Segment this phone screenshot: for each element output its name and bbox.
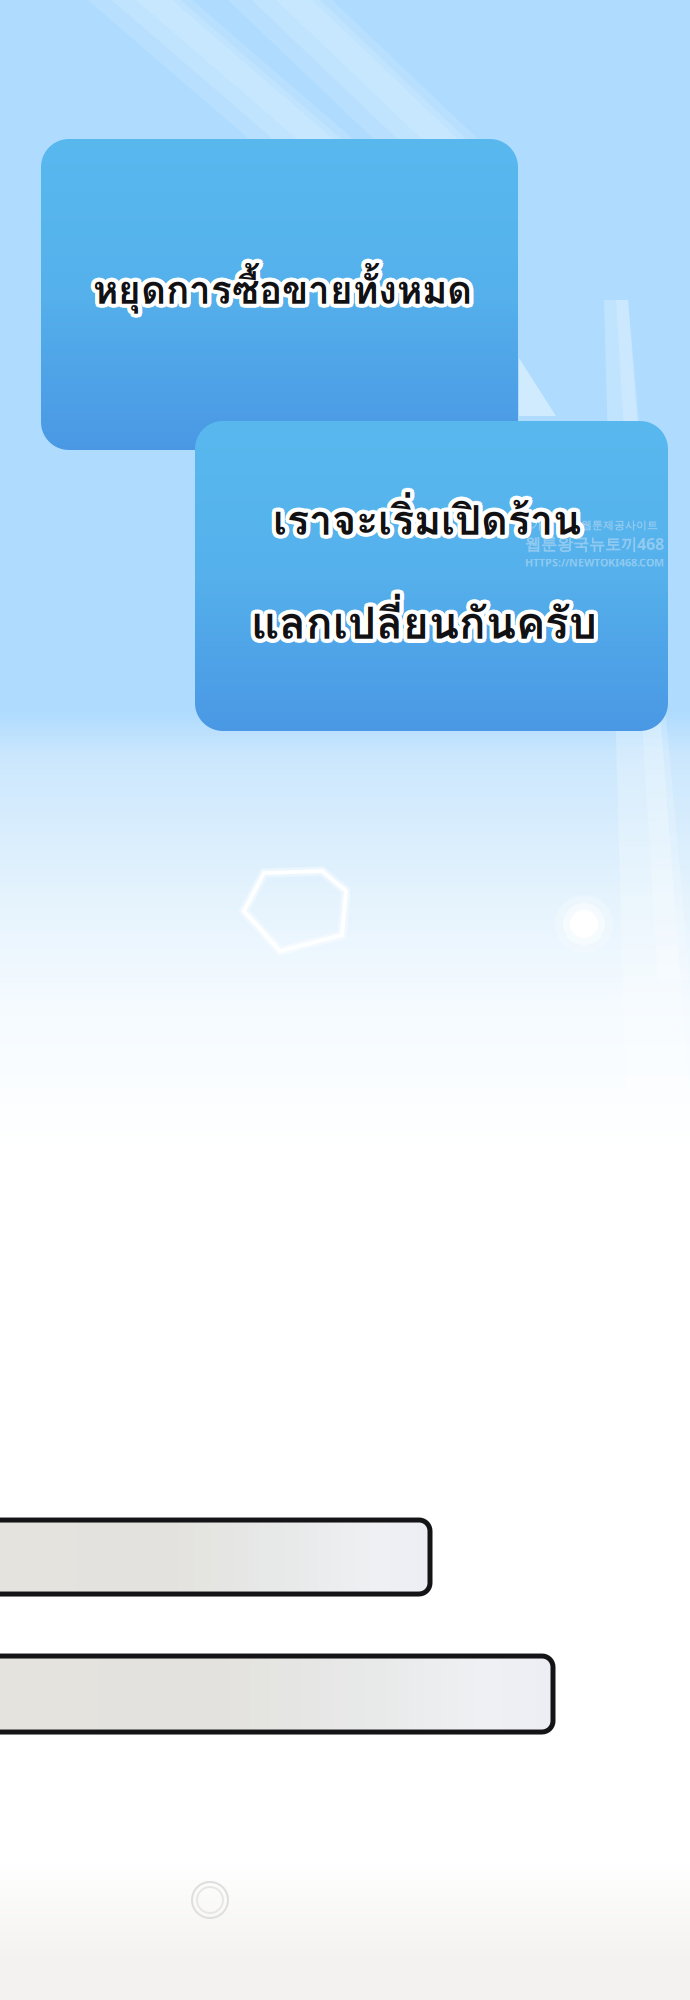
staticText: เราจะเริ่มเปิดร้าน [277, 486, 585, 550]
staticText: HTTPS://NEWTOKI468.COM [525, 555, 664, 570]
staticText: เราจะเริ่มเปิดร้าน [276, 485, 584, 549]
staticText: 가장 빠른 웹툰제공사이트 [531, 519, 658, 532]
staticText: เราจะเริ่มเปิดร้าน [271, 484, 579, 548]
staticText: เราจะเริ่มเปิดร้าน [269, 486, 577, 550]
staticText: เราจะเริ่มเปิดร้าน [273, 484, 581, 548]
staticText: หยุดการซื้อขายทั้งหมด [97, 260, 476, 320]
staticText: หยุดการซื้อขายทั้งหมด [89, 260, 468, 320]
staticText: แลกเปลี่ยนกันครับ [253, 593, 599, 661]
staticText: เราจะเริ่มเปิดร้าน [277, 488, 585, 552]
staticText: แลกเปลี่ยนกันครับ [254, 586, 600, 654]
staticText: หยุดการซื้อขายทั้งหมด [97, 262, 476, 322]
staticText: แลกเปลี่ยนกันครับ [249, 593, 595, 661]
staticText: หยุดการซื้อขายทั้งหมด [95, 256, 474, 316]
staticText: หยุดการซื้อขายทั้งหมด [90, 263, 469, 323]
staticText: แลกเปลี่ยนกันครับ [251, 585, 597, 653]
staticText: หยุดการซื้อขายทั้งหมด [96, 263, 475, 323]
staticText: แลกเปลี่ยนกันครับ [248, 586, 594, 654]
staticText: หยุดการซื้อขายทั้งหมด [97, 258, 476, 318]
staticText: เราจะเริ่มเปิดร้าน [275, 492, 583, 556]
staticText: แลกเปลี่ยนกันครับ [248, 592, 594, 660]
staticText: เราจะเริ่มเปิดร้าน [269, 490, 577, 554]
staticText: แลกเปลี่ยนกันครับ [255, 591, 601, 659]
staticText: เราจะเริ่มเปิดร้าน [275, 484, 583, 548]
staticText: หยุดการซื้อขายทั้งหมด [90, 257, 469, 317]
staticText: แลกเปลี่ยนกันครับ [247, 589, 593, 657]
staticText: เราจะเริ่มเปิดร้าน [270, 485, 578, 549]
staticText: หยุดการซื้อขายทั้งหมด [89, 258, 468, 318]
staticText: เราจะเริ่มเปิดร้าน [273, 492, 581, 556]
staticText: เราจะเริ่มเปิดร้าน [271, 492, 579, 556]
staticText: หยุดการซื้อขายทั้งหมด [95, 264, 474, 324]
staticText: หยุดการซื้อขายทั้งหมด [93, 260, 472, 320]
staticText: เราจะเริ่มเปิดร้าน [270, 491, 578, 555]
staticText: แลกเปลี่ยนกันครับ [247, 587, 593, 655]
staticText: หยุดการซื้อขายทั้งหมด [93, 256, 472, 316]
staticText: หยุดการซื้อขายทั้งหมด [96, 257, 475, 317]
staticText: เราจะเริ่มเปิดร้าน [277, 490, 585, 554]
staticText: แลกเปลี่ยนกันครับ [247, 591, 593, 659]
staticText: หยุดการซื้อขายทั้งหมด [93, 264, 472, 324]
staticText: 웹툰왕국뉴토끼468 [525, 533, 664, 554]
staticText: หยุดการซื้อขายทั้งหมด [89, 262, 468, 322]
staticText: แลกเปลี่ยนกันครับ [251, 593, 597, 661]
staticText: แลกเปลี่ยนกันครับ [255, 587, 601, 655]
staticText: แลกเปลี่ยนกันครับ [253, 585, 599, 653]
staticText: แลกเปลี่ยนกันครับ [255, 589, 601, 657]
staticText: แลกเปลี่ยนกันครับ [249, 585, 595, 653]
staticText: แลกเปลี่ยนกันครับ [251, 589, 597, 657]
staticText: เราจะเริ่มเปิดร้าน [273, 488, 581, 552]
staticText: หยุดการซื้อขายทั้งหมด [91, 256, 470, 316]
staticText: เราจะเริ่มเปิดร้าน [269, 488, 577, 552]
staticText: แลกเปลี่ยนกันครับ [254, 592, 600, 660]
staticText: หยุดการซื้อขายทั้งหมด [91, 264, 470, 324]
staticText: เราจะเริ่มเปิดร้าน [276, 491, 584, 555]
